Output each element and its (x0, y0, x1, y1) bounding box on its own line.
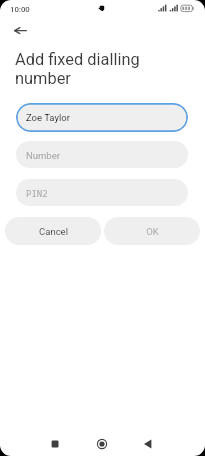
staticText: Zoe Taylor (26, 112, 70, 123)
staticText: PIN2 (26, 187, 48, 199)
button[interactable]: Back (134, 430, 162, 456)
staticText: 10:00 (10, 5, 30, 14)
staticText: Cancel (39, 226, 68, 237)
staticText: Number (26, 150, 60, 161)
button[interactable]: Back (6, 16, 35, 45)
button[interactable]: PIN2 (16, 179, 188, 206)
button[interactable]: Number (16, 141, 188, 168)
button[interactable]: OK (104, 217, 200, 245)
staticText: Add fixed dialling number (15, 50, 165, 88)
button[interactable]: Zoe Taylor (16, 103, 188, 132)
button[interactable]: Recent apps (41, 430, 69, 456)
staticText: OK (146, 226, 159, 237)
button[interactable]: Cancel (5, 217, 101, 245)
button[interactable]: Home (88, 430, 116, 456)
